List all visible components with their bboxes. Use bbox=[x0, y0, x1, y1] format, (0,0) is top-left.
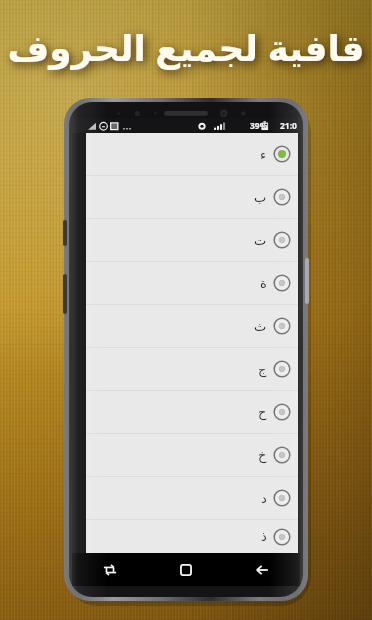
button[interactable]: ذ bbox=[86, 520, 298, 553]
staticText: ت bbox=[254, 233, 267, 248]
button[interactable]: Home bbox=[148, 553, 224, 586]
staticText: ذ bbox=[261, 529, 267, 544]
button[interactable]: ح bbox=[86, 391, 298, 433]
staticText: ح bbox=[258, 405, 267, 420]
staticText: 39% bbox=[250, 120, 268, 132]
staticText: ب bbox=[254, 190, 267, 205]
button[interactable]: خ bbox=[86, 434, 298, 476]
staticText: ء bbox=[260, 147, 267, 162]
button[interactable]: د bbox=[86, 477, 298, 519]
staticText: قافية لجميع الحروف bbox=[0, 23, 372, 72]
staticText: د bbox=[261, 491, 267, 506]
staticText: ة bbox=[260, 276, 267, 291]
staticText: ث bbox=[254, 319, 267, 334]
button[interactable]: ء bbox=[86, 133, 298, 175]
button[interactable]: ت bbox=[86, 219, 298, 261]
button[interactable]: ة bbox=[86, 262, 298, 304]
button[interactable]: ج bbox=[86, 348, 298, 390]
button[interactable]: Back bbox=[224, 553, 300, 586]
staticText: 21:0 bbox=[280, 120, 297, 132]
staticText: خ bbox=[258, 448, 267, 463]
button[interactable]: ث bbox=[86, 305, 298, 347]
button[interactable]: ب bbox=[86, 176, 298, 218]
button[interactable]: Recents bbox=[72, 553, 148, 586]
staticText: ج bbox=[258, 362, 267, 377]
